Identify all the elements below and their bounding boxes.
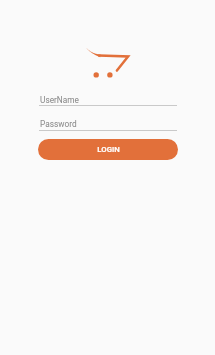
other: App logo [84,45,134,79]
button[interactable]: LOGIN [38,139,178,160]
staticText: Password [40,119,77,129]
staticText: UserName [40,95,79,105]
button[interactable]: Password [39,118,177,131]
staticText: LOGIN [97,145,120,154]
button[interactable]: UserName [39,94,177,106]
